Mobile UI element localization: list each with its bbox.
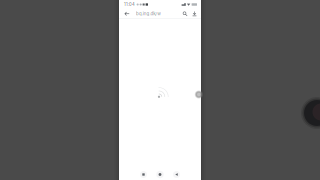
button[interactable]: Back [122, 9, 132, 19]
button[interactable]: Back [171, 170, 181, 179]
button[interactable]: Recents [138, 170, 148, 179]
button[interactable]: Search [180, 9, 189, 18]
staticText: 11:04 [124, 2, 135, 7]
button[interactable]: Home [155, 170, 165, 179]
staticText: bq.ing.dk/w [136, 11, 161, 16]
button[interactable]: Download [190, 9, 199, 18]
